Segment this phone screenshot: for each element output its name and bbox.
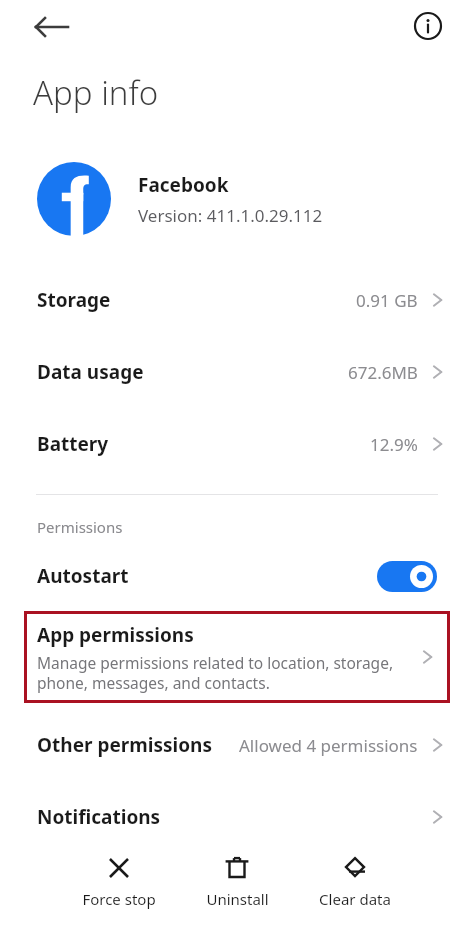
button[interactable]: Notifications [0, 781, 474, 853]
staticText: Autostart [37, 563, 129, 589]
button[interactable]: Storage [0, 264, 474, 336]
button[interactable]: App details info [404, 2, 452, 50]
staticText: Version: 411.1.0.29.112 [138, 204, 323, 227]
staticText: Permissions [37, 517, 123, 537]
staticText: Battery [37, 431, 109, 457]
staticText: Allowed 4 permissions [239, 734, 418, 757]
button[interactable]: Force stop [69, 843, 169, 909]
staticText: App permissions [37, 622, 194, 648]
button[interactable]: Back [28, 3, 76, 51]
staticText: Manage permissions related to location, … [37, 652, 418, 693]
staticText: Force stop [82, 889, 156, 909]
staticText: 672.6MB [348, 361, 418, 384]
button[interactable]: Other permissions [0, 709, 474, 781]
button[interactable]: Uninstall [187, 843, 287, 909]
staticText: Notifications [37, 804, 161, 830]
staticText: 12.9% [370, 433, 418, 456]
button[interactable]: Battery [0, 408, 474, 480]
button[interactable]: App permissions [24, 611, 450, 703]
staticText: Uninstall [206, 889, 269, 909]
button[interactable]: Autostart [0, 549, 474, 603]
staticText: Storage [37, 287, 111, 313]
staticText: 0.91 GB [356, 289, 418, 312]
staticText: Data usage [37, 359, 144, 385]
button[interactable]: Data usage [0, 336, 474, 408]
staticText: Facebook [138, 172, 229, 198]
staticText: App info [33, 70, 159, 115]
staticText: Clear data [319, 889, 391, 909]
other: Autostart toggle, on [377, 561, 437, 592]
staticText: Other permissions [37, 732, 212, 758]
button[interactable]: Clear data [305, 843, 405, 909]
